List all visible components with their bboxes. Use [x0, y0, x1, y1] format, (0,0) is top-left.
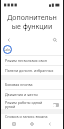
- staticText: Режим работы одной рукой: [5, 100, 53, 109]
- button[interactable]: Home: [27, 119, 37, 129]
- button[interactable]: Back: [45, 119, 55, 129]
- staticText: Движения и жесты: [5, 92, 59, 97]
- staticText: Боковая кнопка: [5, 82, 59, 87]
- button[interactable]: Recents: [9, 119, 19, 129]
- staticText: Дополнительные функции: [6, 13, 58, 31]
- button[interactable]: Режим работы одной рукой: [1, 100, 63, 109]
- button[interactable]: Движения и жесты: [1, 90, 63, 99]
- button[interactable]: Режим нескольких окон: [1, 56, 63, 65]
- button[interactable]: Search: [51, 36, 59, 44]
- staticText: Снимок и запись экрана: [5, 114, 59, 118]
- staticText: Панели дополн. избранных: [5, 68, 59, 73]
- button[interactable]: Back: [5, 36, 13, 44]
- button[interactable]: Панели дополн. избранных: [1, 66, 63, 75]
- button[interactable]: Toggle: [53, 103, 59, 107]
- staticText: Режим нескольких окон: [5, 58, 59, 63]
- button[interactable]: Снимок и запись экрана: [1, 114, 63, 118]
- button[interactable]: Боковая кнопка: [1, 80, 63, 89]
- button[interactable]: Labs: [1, 44, 63, 55]
- staticText: Labs: [4, 48, 11, 52]
